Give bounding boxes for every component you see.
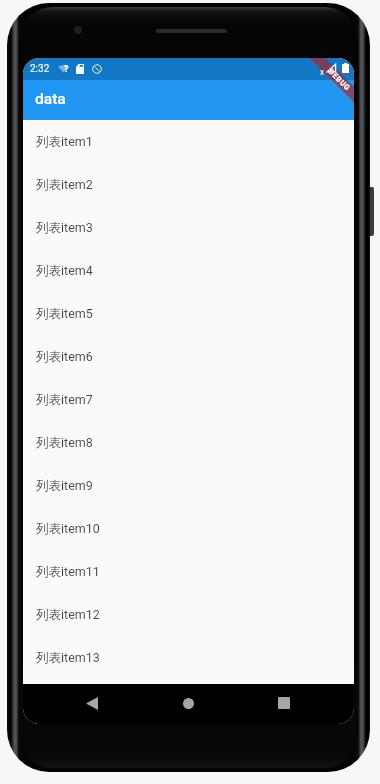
staticText: 列表item9 bbox=[36, 478, 93, 494]
button[interactable]: Home bbox=[170, 685, 206, 721]
staticText: DEBUG bbox=[327, 67, 352, 93]
staticText: 2:32 bbox=[30, 63, 50, 75]
staticText: 列表item3 bbox=[36, 220, 93, 236]
button[interactable]: 列表item4 bbox=[23, 249, 354, 292]
staticText: 列表item6 bbox=[36, 349, 93, 365]
button[interactable]: 列表item13 bbox=[23, 636, 354, 679]
staticText: data bbox=[35, 90, 66, 108]
staticText: 列表item4 bbox=[36, 263, 93, 279]
button[interactable]: 列表item12 bbox=[23, 593, 354, 636]
button[interactable]: 列表item3 bbox=[23, 206, 354, 249]
button[interactable]: 列表item8 bbox=[23, 421, 354, 464]
button[interactable]: Back bbox=[74, 685, 110, 721]
button[interactable]: 列表item9 bbox=[23, 464, 354, 507]
button[interactable]: 列表item6 bbox=[23, 335, 354, 378]
staticText: 列表item10 bbox=[36, 521, 100, 537]
staticText: 列表item13 bbox=[36, 650, 100, 666]
staticText: ? bbox=[64, 64, 69, 74]
button[interactable]: 列表item2 bbox=[23, 163, 354, 206]
staticText: 列表item8 bbox=[36, 435, 93, 451]
staticText: 列表item11 bbox=[36, 564, 100, 580]
staticText: 列表item2 bbox=[36, 177, 93, 193]
staticText: 列表item7 bbox=[36, 392, 93, 408]
button[interactable]: Recents bbox=[266, 685, 302, 721]
button[interactable]: 列表item10 bbox=[23, 507, 354, 550]
button[interactable]: 列表item1 bbox=[23, 120, 354, 163]
staticText: 列表item5 bbox=[36, 306, 93, 322]
staticText: 列表item1 bbox=[36, 134, 93, 150]
staticText: 列表item12 bbox=[36, 607, 100, 623]
button[interactable]: 列表item5 bbox=[23, 292, 354, 335]
button[interactable]: 列表item11 bbox=[23, 550, 354, 593]
button[interactable]: 列表item7 bbox=[23, 378, 354, 421]
